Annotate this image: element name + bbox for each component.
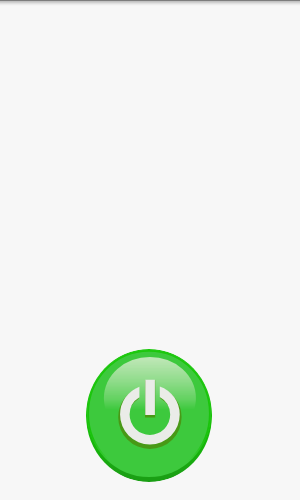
button[interactable]: Power	[86, 349, 212, 482]
